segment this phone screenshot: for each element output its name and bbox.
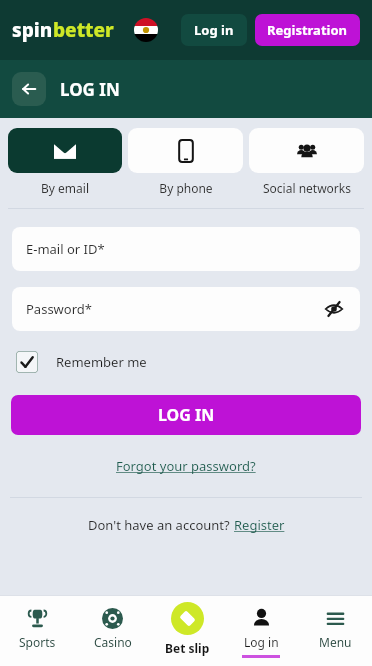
staticText: Remember me	[56, 353, 147, 371]
button[interactable]: spin	[12, 17, 114, 43]
staticText: LOG IN	[60, 78, 120, 101]
staticText: Menu	[319, 634, 352, 650]
staticText: Sports	[19, 634, 56, 650]
staticText: Log in	[244, 634, 279, 650]
staticText: spin	[12, 17, 53, 43]
staticText: LOG IN	[158, 404, 215, 426]
button[interactable]: Log in	[224, 596, 298, 666]
button[interactable]: Forgot your password?	[116, 457, 256, 475]
staticText: Casino	[94, 634, 132, 650]
staticText: better	[53, 17, 114, 43]
button[interactable]: LOG IN	[11, 395, 361, 435]
button[interactable]: Show password	[322, 297, 346, 321]
staticText: Don't have an account?	[88, 516, 234, 534]
button[interactable]: By email	[8, 128, 122, 196]
staticText: Social networks	[263, 180, 351, 196]
button[interactable]: Social networks	[249, 128, 364, 196]
button[interactable]: E-mail or ID*	[12, 227, 360, 271]
button[interactable]: Sports	[0, 596, 75, 666]
staticText: Bet slip	[165, 640, 210, 656]
staticText: Log in	[194, 21, 234, 39]
button[interactable]: Log in	[181, 14, 247, 46]
button[interactable]: Register	[234, 516, 285, 534]
button[interactable]: Registration	[255, 14, 360, 46]
staticText: E-mail or ID*	[26, 240, 105, 258]
button[interactable]: Password*	[12, 287, 360, 331]
staticText: By email	[41, 180, 89, 196]
button[interactable]: By phone	[128, 128, 243, 196]
button[interactable]: Bet slip	[150, 596, 224, 666]
staticText: Password*	[26, 300, 92, 318]
button[interactable]: Back	[12, 72, 46, 106]
button[interactable]: Remember me	[16, 351, 356, 373]
staticText: Registration	[267, 21, 348, 39]
staticText: By phone	[159, 180, 213, 196]
button[interactable]: Menu	[298, 596, 372, 666]
button[interactable]: Casino	[75, 596, 150, 666]
other: Language Egypt	[134, 18, 158, 42]
